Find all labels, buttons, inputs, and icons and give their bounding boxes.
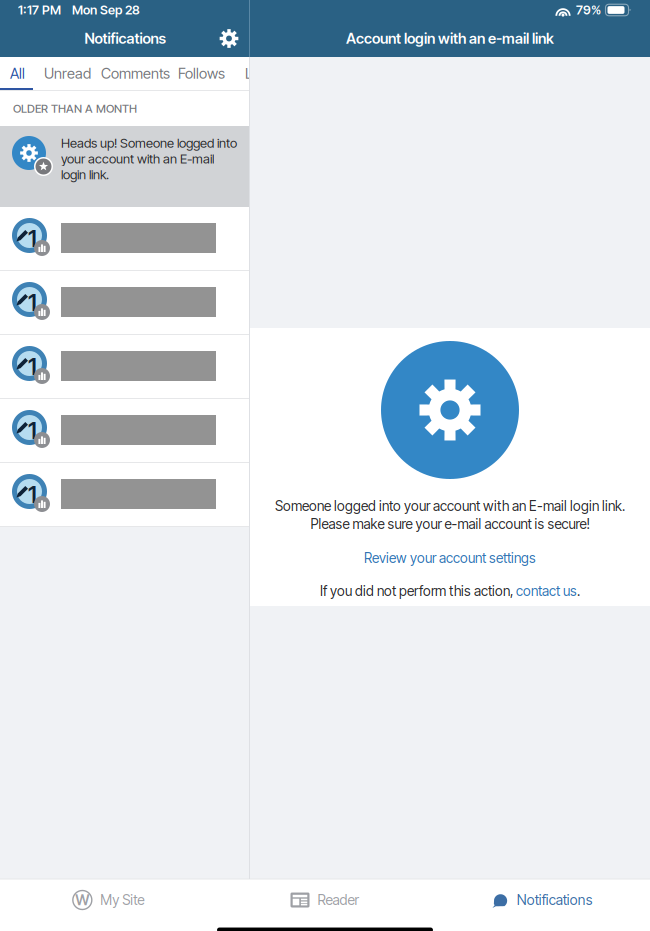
staticText: . xyxy=(577,583,580,599)
staticText: If you did not perform this action, xyxy=(320,583,516,599)
staticText: Heads up! Someone logged into your accou… xyxy=(61,135,237,182)
staticText: Comments xyxy=(101,65,170,82)
staticText: Please make sure your e-mail account is … xyxy=(310,516,589,532)
button[interactable]: Follows xyxy=(178,57,236,90)
button[interactable]: Heads up! Someone logged into your accou… xyxy=(0,126,250,207)
staticText: My Site xyxy=(100,891,144,908)
staticText: All xyxy=(10,65,25,82)
button[interactable]: Likes xyxy=(245,57,289,90)
button[interactable]: W xyxy=(0,879,217,920)
staticText: 1 xyxy=(28,289,37,316)
staticText: Likes xyxy=(245,65,278,82)
button[interactable]: Comments xyxy=(101,57,173,90)
button[interactable]: 1 xyxy=(0,463,250,527)
staticText: Reader xyxy=(317,891,359,908)
button[interactable]: contact us xyxy=(516,583,577,599)
button[interactable]: 1 xyxy=(0,399,250,463)
staticText: 1:17 PM xyxy=(18,2,61,18)
button[interactable]: Unread xyxy=(44,57,96,90)
staticText: 1 xyxy=(28,481,37,508)
staticText: Mon Sep 28 xyxy=(72,2,140,18)
button[interactable]: 1 xyxy=(0,335,250,399)
staticText: Notifications xyxy=(517,891,593,908)
staticText: W xyxy=(75,891,89,909)
staticText: Unread xyxy=(44,65,91,82)
button[interactable]: Settings xyxy=(208,20,250,57)
button[interactable]: All xyxy=(10,57,40,90)
staticText: 1 xyxy=(28,417,37,444)
staticText: 79% xyxy=(576,2,601,18)
staticText: Someone logged into your account with an… xyxy=(275,498,625,514)
staticText: 1 xyxy=(28,225,37,252)
staticText: OLDER THAN A MONTH xyxy=(13,102,137,115)
button[interactable]: Notifications xyxy=(433,879,650,920)
button[interactable]: Review your account settings xyxy=(364,533,536,574)
staticText: Follows xyxy=(178,65,225,82)
staticText: contact us xyxy=(516,583,577,599)
staticText: 1 xyxy=(28,353,37,380)
staticText: Account login with an e-mail link xyxy=(346,30,554,47)
staticText: Review your account settings xyxy=(364,550,536,566)
button[interactable]: 1 xyxy=(0,207,250,271)
button[interactable]: Reader xyxy=(217,879,433,920)
button[interactable]: 1 xyxy=(0,271,250,335)
staticText: Notifications xyxy=(84,30,165,47)
